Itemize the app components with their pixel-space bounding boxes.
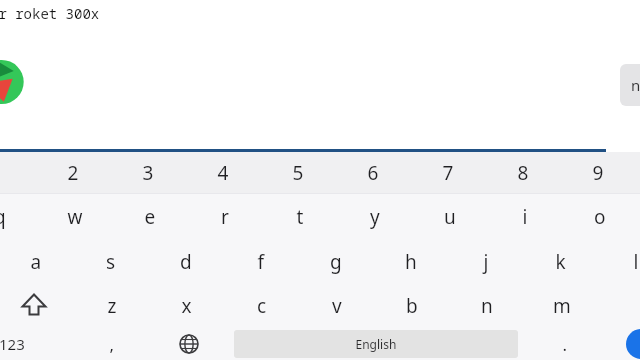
button[interactable]: Suggestion bbox=[620, 64, 640, 106]
button[interactable] bbox=[535, 328, 595, 360]
button[interactable] bbox=[374, 239, 448, 284]
button[interactable] bbox=[488, 194, 562, 239]
button[interactable] bbox=[111, 152, 185, 193]
button[interactable]: Enter bbox=[626, 329, 640, 359]
button[interactable] bbox=[599, 239, 640, 284]
button[interactable] bbox=[413, 194, 487, 239]
button[interactable] bbox=[525, 283, 599, 328]
button[interactable] bbox=[338, 194, 412, 239]
button[interactable] bbox=[375, 283, 449, 328]
button[interactable] bbox=[450, 283, 524, 328]
button[interactable]: Change keyboard language bbox=[165, 328, 213, 360]
button[interactable] bbox=[563, 194, 637, 239]
button[interactable] bbox=[561, 152, 635, 193]
button[interactable] bbox=[38, 194, 112, 239]
button[interactable] bbox=[0, 239, 73, 284]
button[interactable] bbox=[149, 239, 223, 284]
button[interactable] bbox=[188, 194, 262, 239]
button[interactable] bbox=[300, 283, 374, 328]
button[interactable] bbox=[82, 328, 142, 360]
button[interactable] bbox=[263, 194, 337, 239]
button[interactable] bbox=[36, 152, 110, 193]
button[interactable]: Shift bbox=[0, 283, 54, 328]
button[interactable] bbox=[299, 239, 373, 284]
button[interactable] bbox=[486, 152, 560, 193]
button[interactable] bbox=[225, 283, 299, 328]
button[interactable] bbox=[150, 283, 224, 328]
button[interactable] bbox=[261, 152, 335, 193]
button[interactable] bbox=[336, 152, 410, 193]
button[interactable] bbox=[75, 283, 149, 328]
button[interactable] bbox=[74, 239, 148, 284]
button[interactable] bbox=[0, 194, 37, 239]
button[interactable] bbox=[224, 239, 298, 284]
button[interactable] bbox=[449, 239, 523, 284]
button[interactable] bbox=[186, 152, 260, 193]
button[interactable] bbox=[0, 328, 46, 360]
button[interactable] bbox=[113, 194, 187, 239]
button[interactable] bbox=[524, 239, 598, 284]
button[interactable] bbox=[411, 152, 485, 193]
button[interactable] bbox=[234, 330, 518, 358]
